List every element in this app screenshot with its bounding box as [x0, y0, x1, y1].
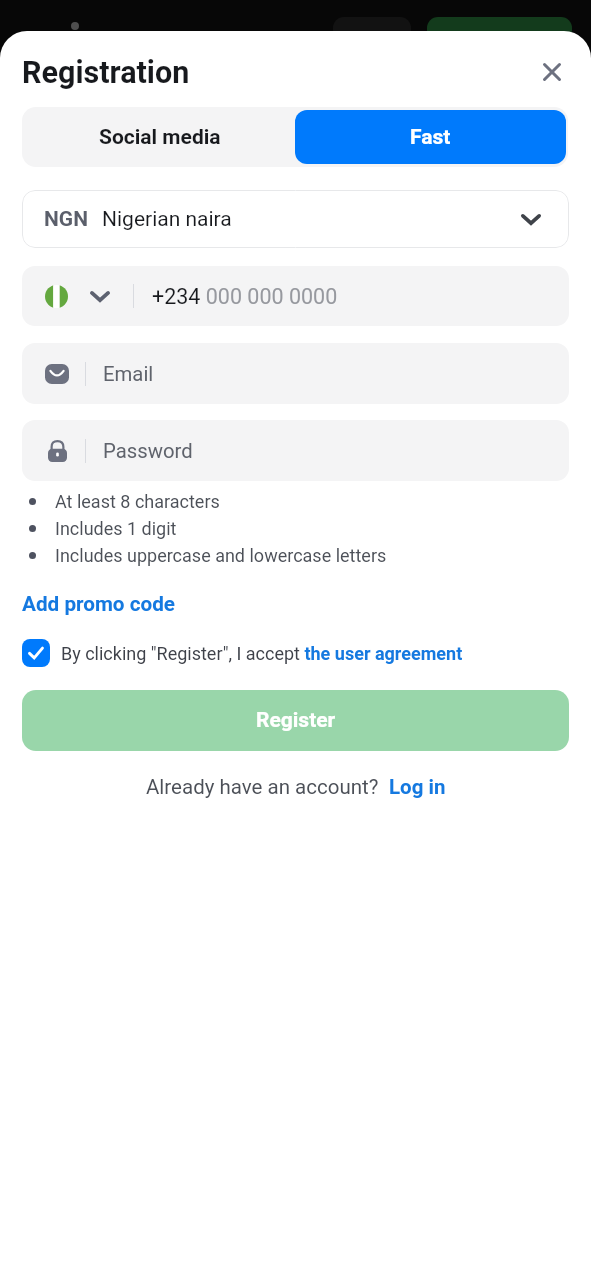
- staticText: +234 000 000 0000: [152, 284, 338, 309]
- button[interactable]: NGN: [22, 190, 569, 248]
- staticText: Fast: [410, 125, 451, 150]
- staticText: NGN: [44, 207, 88, 232]
- staticText: Log in: [389, 775, 446, 799]
- staticText: Email: [103, 362, 154, 386]
- staticText: Password: [103, 439, 193, 463]
- button[interactable]: Close: [535, 55, 569, 89]
- button[interactable]: Social media: [24, 110, 295, 164]
- button[interactable]: Log in: [389, 775, 446, 799]
- button[interactable]: Password: [22, 420, 569, 481]
- button[interactable]: Email: [22, 343, 569, 404]
- button[interactable]: By clicking "Register", I accept the use…: [22, 639, 569, 667]
- staticText: At least 8 characters: [55, 491, 220, 512]
- staticText: By clicking "Register", I accept the use…: [61, 643, 463, 664]
- button[interactable]: +234 000 000 0000: [22, 266, 569, 326]
- staticText: Register: [256, 708, 336, 733]
- staticText: Includes 1 digit: [55, 518, 177, 539]
- button[interactable]: Register: [22, 690, 569, 751]
- staticText: Registration: [22, 55, 190, 91]
- staticText: Social media: [99, 125, 221, 150]
- button[interactable]: Fast: [295, 110, 566, 164]
- staticText: Add promo code: [22, 592, 176, 616]
- staticText: Already have an account?: [146, 775, 379, 799]
- staticText: Nigerian naira: [102, 207, 232, 232]
- staticText: Includes uppercase and lowercase letters: [55, 545, 387, 566]
- button[interactable]: Add promo code: [22, 592, 176, 616]
